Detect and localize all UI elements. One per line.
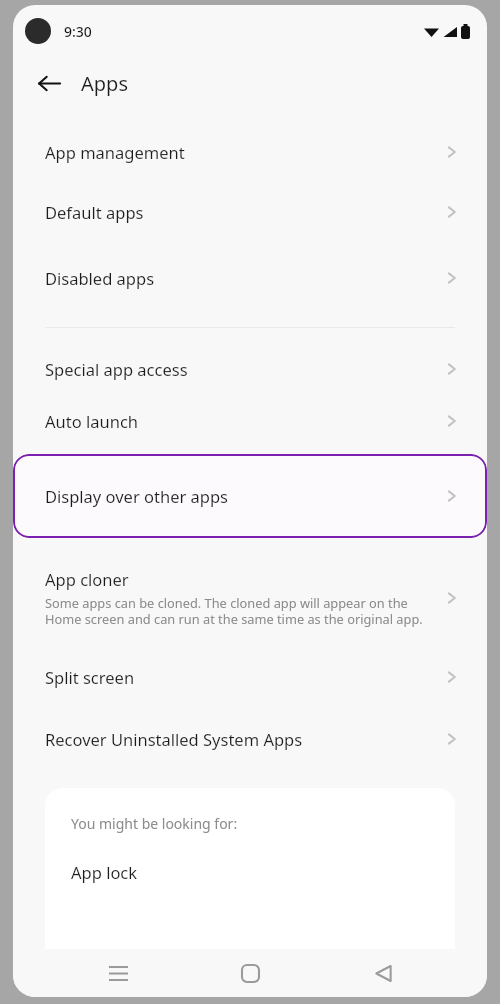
staticText: Default apps <box>45 201 144 223</box>
button[interactable]: Display over other apps <box>13 454 487 538</box>
button[interactable]: Split screen <box>13 648 487 706</box>
button[interactable]: Special app access <box>13 346 487 392</box>
button[interactable]: Back <box>29 63 69 103</box>
staticText: App management <box>45 141 185 163</box>
staticText: You might be looking for: <box>71 814 238 833</box>
button[interactable]: Recent apps <box>90 949 146 997</box>
button[interactable]: Auto launch <box>13 392 487 450</box>
staticText: Recover Uninstalled System Apps <box>45 728 303 750</box>
staticText: Auto launch <box>45 410 138 432</box>
staticText: Display over other apps <box>45 485 433 507</box>
staticText: Disabled apps <box>45 267 155 289</box>
staticText: 9:30 <box>64 22 92 41</box>
button[interactable]: App cloner <box>13 548 487 648</box>
staticText: Apps <box>81 70 128 97</box>
button[interactable]: Back <box>355 949 411 997</box>
staticText: Some apps can be cloned. The cloned app … <box>45 594 433 628</box>
staticText: Split screen <box>45 666 135 688</box>
button[interactable]: Home <box>222 949 278 997</box>
staticText: App cloner <box>45 568 129 590</box>
button[interactable]: Default apps <box>13 179 487 245</box>
staticText: App lock <box>71 861 138 883</box>
button[interactable]: You might be looking for: <box>45 788 455 949</box>
staticText: Special app access <box>45 358 188 380</box>
button[interactable]: App management <box>13 125 487 179</box>
button[interactable]: Recover Uninstalled System Apps <box>13 706 487 772</box>
button[interactable]: Disabled apps <box>13 245 487 311</box>
